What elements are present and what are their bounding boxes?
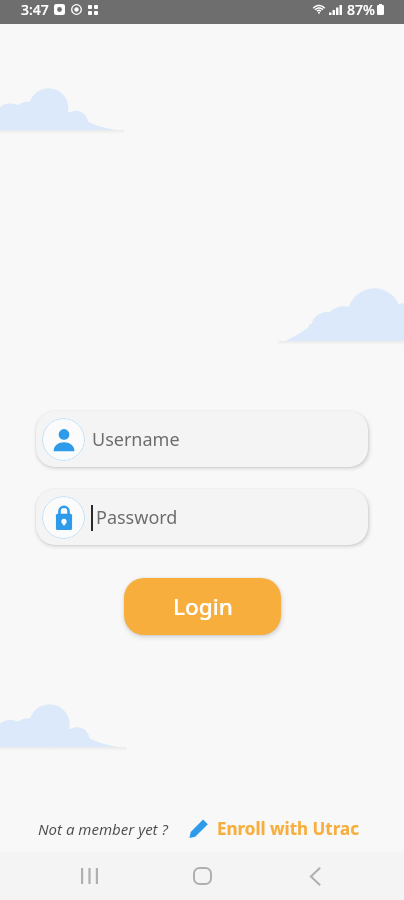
button[interactable]: Password xyxy=(36,489,368,545)
staticText: 3:47 xyxy=(21,0,49,19)
button[interactable]: Recent apps xyxy=(65,852,113,900)
button[interactable]: Enroll with Utrac xyxy=(189,817,359,840)
staticText: Not a member yet ? xyxy=(38,819,168,839)
staticText: Enroll with Utrac xyxy=(217,817,359,840)
button[interactable]: Login xyxy=(124,578,281,635)
staticText: 87% xyxy=(347,0,375,19)
button[interactable]: Home xyxy=(178,852,226,900)
staticText: Password xyxy=(96,505,178,530)
staticText: Username xyxy=(92,427,180,452)
button[interactable]: Username xyxy=(36,411,368,467)
button[interactable]: Back xyxy=(291,852,339,900)
staticText: Login xyxy=(173,591,233,622)
